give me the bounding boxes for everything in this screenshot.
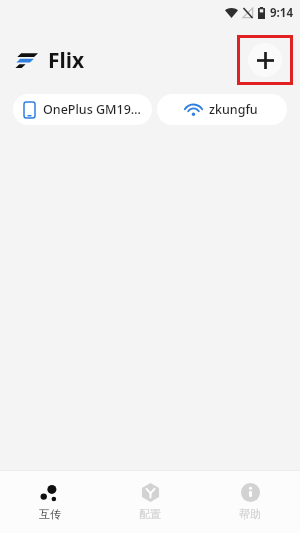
- button[interactable]: 互传: [0, 471, 100, 533]
- staticText: 帮助: [239, 507, 261, 521]
- button[interactable]: 帮助: [200, 471, 300, 533]
- staticText: OnePlus GM19…: [43, 101, 141, 118]
- button[interactable]: zkungfu: [157, 94, 287, 125]
- button[interactable]: OnePlus GM19…: [13, 94, 152, 125]
- staticText: Flix: [48, 46, 85, 75]
- staticText: zkungfu: [209, 101, 258, 118]
- button[interactable]: 配置: [100, 471, 200, 533]
- staticText: 9:14: [270, 5, 293, 21]
- staticText: 互传: [39, 507, 61, 521]
- button[interactable]: Add device: [240, 38, 290, 82]
- staticText: 配置: [139, 507, 161, 521]
